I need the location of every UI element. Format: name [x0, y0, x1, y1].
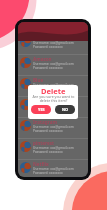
button[interactable]: Paytm — [18, 34, 88, 55]
staticText: Username: xxx@gmail.com — [33, 83, 74, 87]
staticText: Password: xxxxxxxx — [33, 171, 63, 175]
staticText: Amazon — [33, 56, 52, 62]
staticText: Instagram — [33, 119, 57, 125]
staticText: Username: xxx@gmail.com — [33, 62, 74, 66]
staticText: pinterest — [33, 140, 55, 146]
button[interactable]: Instagram — [18, 118, 88, 139]
staticText: Username: xxx@gmail.com — [33, 167, 74, 171]
staticText: Username: xxx@gmail.com — [33, 41, 74, 45]
staticText: YES — [38, 107, 45, 112]
button[interactable]: Blue — [18, 76, 88, 97]
button[interactable]: pinterest — [18, 139, 88, 160]
button[interactable]: YES — [31, 105, 51, 114]
button[interactable]: Netflix — [18, 160, 88, 177]
staticText: Username: xxx@gmail.com — [33, 104, 74, 108]
staticText: NO — [62, 107, 69, 112]
staticText: Delete — [41, 86, 66, 96]
staticText: Password: xxxxxxxx — [33, 150, 63, 154]
staticText: Swiggy — [33, 98, 50, 104]
button[interactable]: Swiggy — [18, 97, 88, 118]
staticText: Blue — [33, 77, 44, 83]
button[interactable]: Amazon — [18, 55, 88, 76]
button[interactable]: NO — [55, 105, 75, 114]
staticText: Password: xxxxxxxx — [33, 45, 63, 49]
staticText: Password: xxxxxxxx — [33, 108, 63, 112]
staticText: Netflix — [33, 161, 49, 167]
staticText: Password: xxxxxxxx — [33, 87, 63, 91]
staticText: Password: xxxxxxxx — [33, 129, 63, 133]
staticText: Username: xxx@gmail.com — [33, 146, 74, 150]
staticText: Username: xxx@gmail.com — [33, 125, 74, 129]
staticText: Are you sure you want to delete this ite… — [32, 94, 75, 103]
staticText: Password: xxxxxxxx — [33, 66, 63, 70]
